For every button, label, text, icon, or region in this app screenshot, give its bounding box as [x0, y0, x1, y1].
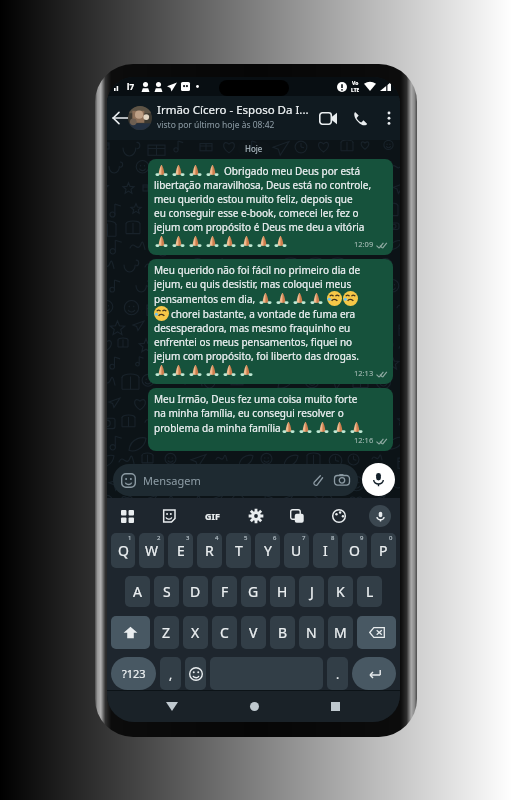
- button[interactable]: C: [212, 616, 237, 649]
- staticText: O: [349, 541, 360, 560]
- button[interactable]: S: [154, 576, 179, 607]
- staticText: W: [145, 541, 159, 560]
- staticText: jejum com propósito, foi liberto das dro…: [154, 349, 359, 363]
- button[interactable]: I: [313, 533, 338, 568]
- staticText: Y: [264, 541, 272, 560]
- button[interactable]: Y: [255, 533, 280, 568]
- button[interactable]: P: [371, 533, 396, 568]
- button[interactable]: D: [183, 576, 208, 607]
- staticText: problema da minha família: [154, 421, 281, 435]
- button[interactable]: Translate: [286, 505, 308, 527]
- staticText: 8: [331, 534, 335, 542]
- staticText: N: [306, 623, 317, 642]
- button[interactable]: Home: [238, 691, 270, 722]
- staticText: A: [133, 582, 142, 601]
- staticText: L: [366, 582, 374, 601]
- staticText: enfrentei os meus pensamentos, fiquei no: [154, 335, 353, 349]
- staticText: F: [221, 582, 229, 601]
- button[interactable]: Enter: [352, 657, 396, 690]
- button[interactable]: Q: [111, 533, 135, 568]
- button[interactable]: T: [226, 533, 251, 568]
- staticText: Hoje: [245, 143, 263, 154]
- button[interactable]: O: [342, 533, 367, 568]
- button[interactable]: J: [299, 576, 324, 607]
- button[interactable]: Mensagem: [113, 464, 358, 496]
- staticText: C: [220, 623, 229, 642]
- staticText: 9: [360, 534, 364, 542]
- staticText: Mensagem: [143, 473, 201, 488]
- button[interactable]: W: [139, 533, 164, 568]
- staticText: G: [248, 582, 259, 601]
- button[interactable]: G: [241, 576, 266, 607]
- button[interactable]: Apps: [116, 505, 138, 527]
- button[interactable]: Emoji: [185, 657, 206, 690]
- staticText: 3: [186, 534, 190, 542]
- staticText: pensamentos em dia,: [154, 292, 258, 306]
- button[interactable]: R: [197, 533, 222, 568]
- staticText: T: [235, 541, 243, 560]
- staticText: na minha família, eu consegui resolver o: [154, 406, 344, 420]
- button[interactable]: H: [270, 576, 295, 607]
- button[interactable]: More options: [379, 96, 399, 140]
- button[interactable]: Shift: [111, 616, 150, 649]
- other: Attach: [310, 473, 324, 487]
- staticText: 6: [273, 534, 277, 542]
- staticText: P: [379, 541, 388, 560]
- button[interactable]: M: [328, 616, 353, 649]
- other: Camera: [334, 472, 350, 488]
- button[interactable]: K: [328, 576, 353, 607]
- staticText: libertação maravilhosa, Deus está no con…: [154, 178, 372, 192]
- button[interactable]: B: [270, 616, 295, 649]
- button[interactable]: Call: [347, 96, 373, 140]
- staticText: visto por último hoje às 08:42: [157, 119, 275, 131]
- button[interactable]: U: [284, 533, 309, 568]
- button[interactable]: GIF: [199, 503, 225, 529]
- staticText: Meu querido não foi fácil no primeiro di…: [154, 263, 361, 277]
- button[interactable]: Back: [109, 96, 131, 140]
- staticText: S: [163, 582, 171, 601]
- staticText: 5: [244, 534, 248, 542]
- button[interactable]: E: [168, 533, 193, 568]
- staticText: Irmão Cícero - Esposo Da I...: [157, 102, 309, 118]
- button[interactable]: Stickers: [158, 505, 180, 527]
- button[interactable]: Backspace: [357, 616, 396, 649]
- button[interactable]: Voice input: [369, 505, 391, 527]
- staticText: l7: [127, 81, 134, 92]
- staticText: 4: [215, 534, 219, 542]
- staticText: ,: [169, 666, 173, 682]
- button[interactable]: X: [183, 616, 208, 649]
- staticText: 12:13: [354, 368, 374, 378]
- staticText: R: [205, 541, 214, 560]
- staticText: K: [336, 582, 345, 601]
- staticText: 0: [389, 534, 393, 542]
- button[interactable]: N: [299, 616, 324, 649]
- button[interactable]: L: [357, 576, 382, 607]
- button[interactable]: Themes: [328, 505, 350, 527]
- button[interactable]: .: [327, 657, 348, 690]
- button[interactable]: Voice message: [362, 463, 395, 496]
- button[interactable]: Z: [154, 616, 179, 649]
- button[interactable]: F: [212, 576, 237, 607]
- staticText: H: [277, 582, 288, 601]
- staticText: LTE: [351, 87, 360, 94]
- staticText: 7: [302, 534, 306, 542]
- staticText: U: [291, 541, 302, 560]
- button[interactable]: ,: [160, 657, 181, 690]
- button[interactable]: V: [241, 616, 266, 649]
- staticText: D: [190, 582, 201, 601]
- button[interactable]: ?123: [111, 657, 156, 690]
- staticText: jejum com propósito é Deus me deu a vitó…: [154, 220, 365, 234]
- staticText: Meu Irmão, Deus fez uma coisa muito fort…: [154, 392, 358, 406]
- staticText: V: [249, 623, 258, 642]
- staticText: .: [336, 666, 340, 682]
- button[interactable]: A: [125, 576, 150, 607]
- button[interactable]: Settings: [245, 505, 267, 527]
- button[interactable]: Back: [156, 691, 188, 722]
- staticText: Obrigado meu Deus por está: [224, 164, 361, 178]
- staticText: 1: [128, 534, 132, 542]
- button[interactable]: Video call: [315, 96, 341, 140]
- button[interactable]: Recents: [319, 691, 351, 722]
- staticText: chorei bastante, a vontade de fuma era: [171, 307, 356, 321]
